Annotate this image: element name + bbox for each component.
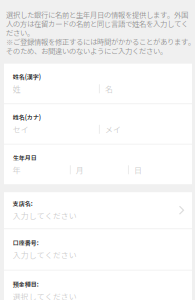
staticText: 人の方は在留カードの名前と同じ言語で姓名を入力してく	[6, 18, 188, 29]
staticText: 日	[134, 164, 142, 175]
staticText: セイ	[13, 124, 29, 135]
staticText: ださい。	[6, 27, 34, 38]
button[interactable]: 支店名:	[4, 192, 192, 228]
staticText: 月	[76, 164, 84, 175]
staticText: 年	[13, 164, 21, 175]
staticText: 入力してください	[13, 249, 77, 260]
staticText: メイ	[105, 124, 121, 135]
staticText: 選択してください	[13, 291, 77, 300]
staticText: 名	[105, 83, 113, 94]
staticText: ※ご登録情報を修正するには時間がかかることがあります。	[6, 36, 195, 47]
staticText: 姓名(カナ)	[13, 113, 41, 122]
staticText: 入力してください	[13, 210, 77, 221]
staticText: 支店名:	[13, 199, 33, 208]
button[interactable]: 口座番号:	[4, 229, 192, 270]
button[interactable]: 預金種目:	[4, 271, 192, 300]
staticText: 生年月日	[13, 153, 37, 162]
staticText: 預金種目:	[13, 280, 39, 289]
staticText: 姓	[13, 83, 21, 94]
staticText: 選択した銀行に名前と生年月日の情報を提供します。外国	[6, 9, 188, 20]
staticText: 口座番号:	[13, 238, 39, 247]
staticText: そのため、お間違いのないようにご入力ください。	[6, 45, 167, 56]
staticText: 姓名(漢字)	[13, 72, 41, 81]
